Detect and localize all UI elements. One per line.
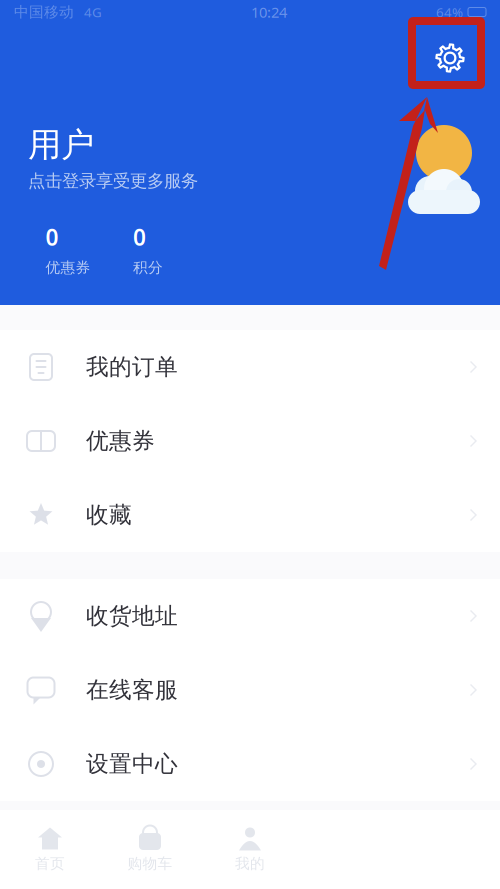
button[interactable]: 我的 bbox=[200, 822, 300, 876]
staticText: 在线客服 bbox=[86, 676, 178, 704]
staticText: 4G bbox=[84, 3, 102, 21]
staticText: 0 bbox=[45, 222, 58, 252]
staticText: 收货地址 bbox=[86, 602, 178, 630]
staticText: 优惠券 bbox=[86, 427, 155, 455]
button[interactable]: 设置中心 bbox=[0, 727, 500, 801]
button[interactable]: 我的订单 bbox=[0, 330, 500, 404]
staticText: 优惠券 bbox=[45, 258, 90, 276]
staticText: 收藏 bbox=[86, 501, 132, 529]
button[interactable]: 购物车 bbox=[100, 822, 200, 876]
staticText: 用户 bbox=[28, 124, 94, 165]
staticText: 10:24 bbox=[251, 2, 287, 22]
staticText: 点击登录享受更多服务 bbox=[28, 170, 198, 192]
button[interactable]: 在线客服 bbox=[0, 653, 500, 727]
staticText: 首页 bbox=[35, 854, 65, 872]
button[interactable]: 首页 bbox=[0, 822, 100, 876]
button[interactable]: Settings bbox=[422, 30, 478, 86]
staticText: 积分 bbox=[133, 258, 163, 276]
staticText: 我的 bbox=[235, 854, 265, 872]
staticText: 0 bbox=[133, 222, 146, 252]
button[interactable]: 收藏 bbox=[0, 478, 500, 552]
staticText: 我的订单 bbox=[86, 353, 178, 381]
staticText: 设置中心 bbox=[86, 750, 178, 778]
staticText: 中国移动 bbox=[14, 3, 74, 21]
button[interactable]: 优惠券 bbox=[0, 404, 500, 478]
staticText: 64% bbox=[436, 3, 463, 21]
staticText: 购物车 bbox=[127, 854, 172, 872]
button[interactable]: 收货地址 bbox=[0, 579, 500, 653]
